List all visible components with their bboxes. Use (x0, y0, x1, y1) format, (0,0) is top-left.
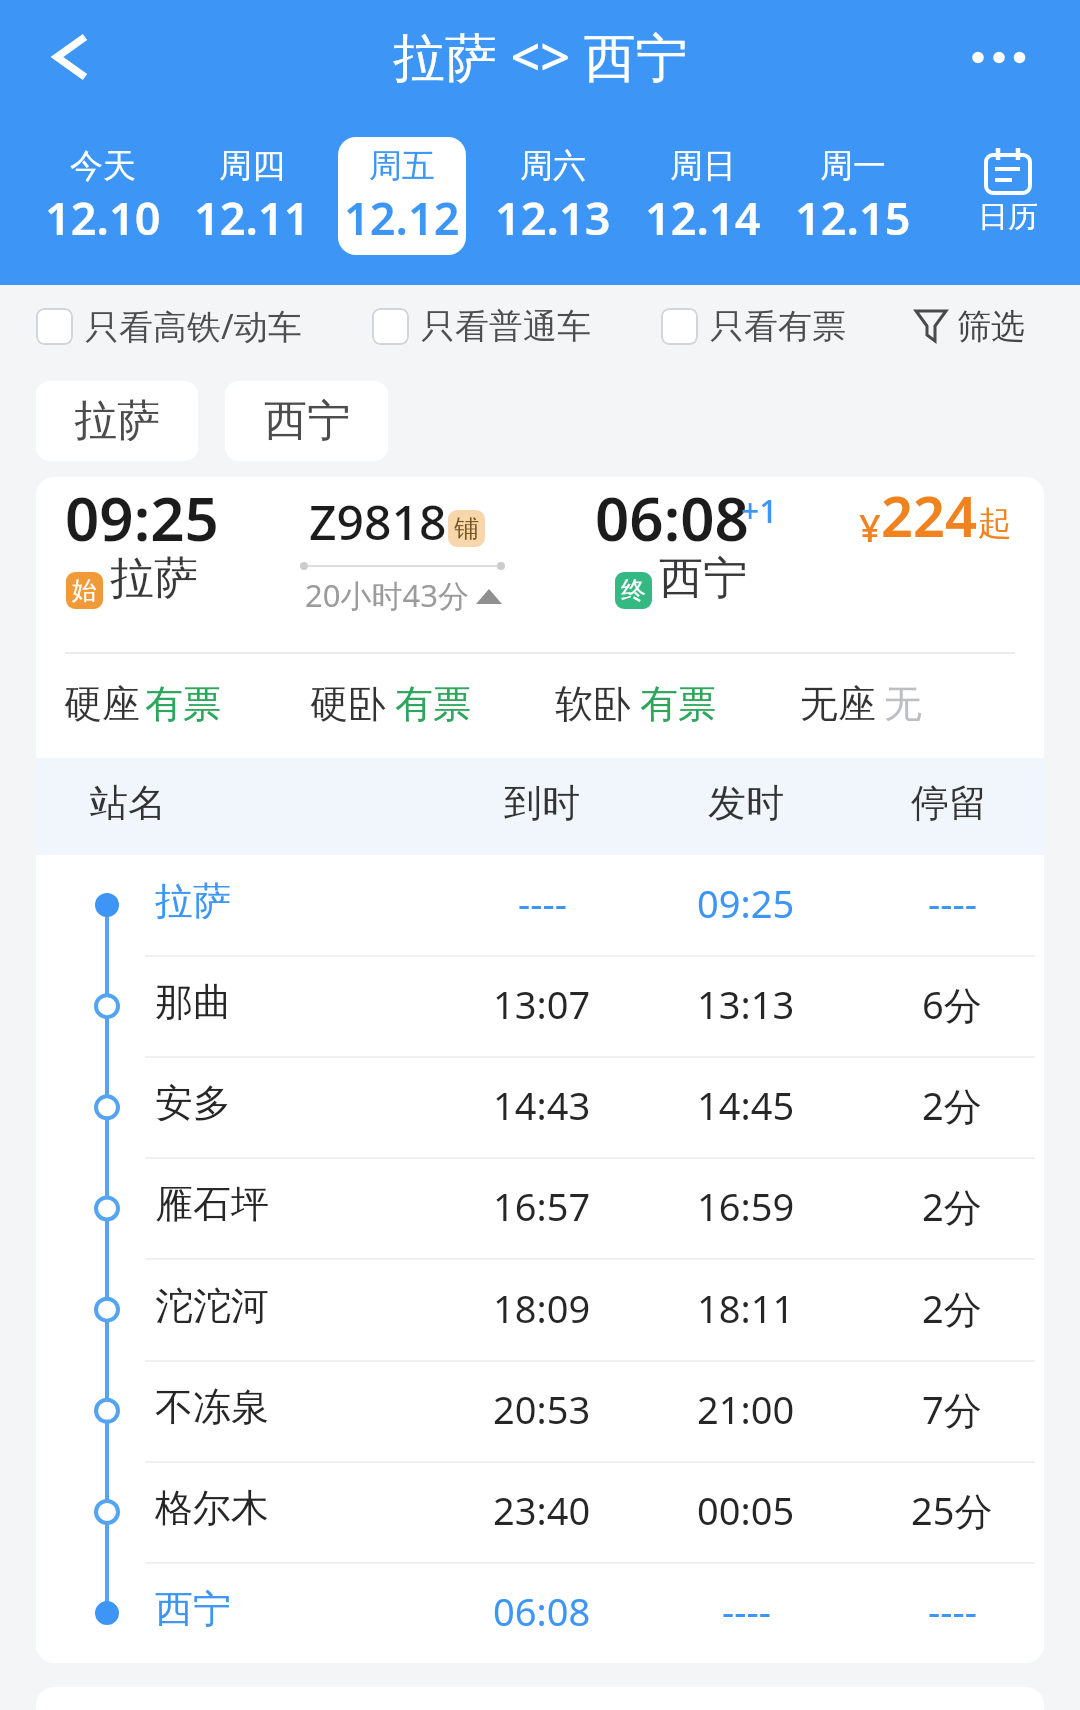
button[interactable]: 周六 (489, 137, 617, 255)
button[interactable] (136, 1158, 1044, 1258)
staticText: 硬座 (64, 680, 140, 728)
button[interactable]: 今天 (39, 137, 167, 255)
staticText: 12.13 (495, 187, 611, 248)
staticText: 13:07 (493, 978, 591, 1030)
staticText: 20小时43分 (305, 574, 469, 616)
staticText: 西宁 (264, 394, 350, 448)
staticText: 今天 (70, 145, 136, 187)
staticText: 周五 (369, 145, 435, 187)
button[interactable]: 拉萨 (36, 381, 198, 461)
staticText: 有票 (145, 680, 221, 728)
staticText: 00:05 (697, 1484, 795, 1536)
staticText: 始 (72, 575, 97, 606)
button[interactable]: 筛选 (915, 296, 1025, 356)
staticText: 14:43 (493, 1079, 591, 1131)
staticText: 到时 (504, 779, 580, 827)
staticText: 站名 (90, 779, 166, 827)
staticText: 12.11 (194, 187, 310, 248)
staticText: 20:53 (493, 1383, 591, 1435)
staticText: 不冻泉 (155, 1383, 269, 1431)
button[interactable] (136, 956, 1044, 1056)
staticText: 25分 (911, 1484, 993, 1536)
staticText: ---- (928, 1585, 977, 1637)
staticText: 发时 (708, 779, 784, 827)
staticText: 18:09 (493, 1282, 591, 1334)
button[interactable] (136, 1361, 1044, 1461)
staticText: 09:25 (65, 477, 219, 559)
button[interactable]: 只看有票 (661, 296, 846, 356)
staticText: 12.14 (645, 187, 761, 248)
staticText: 有票 (640, 680, 716, 728)
button[interactable] (136, 1057, 1044, 1157)
staticText: 软卧 (555, 680, 631, 728)
staticText: 6分 (922, 978, 982, 1030)
button[interactable] (136, 1260, 1044, 1360)
staticText: 铺 (454, 513, 479, 544)
staticText: 只看有票 (710, 305, 846, 348)
button[interactable] (136, 1563, 1044, 1663)
staticText: 无座 (800, 680, 876, 728)
staticText: 12.15 (795, 187, 911, 248)
staticText: 雁石坪 (155, 1180, 269, 1228)
staticText: 起 (978, 502, 1012, 545)
button[interactable]: 日历 (960, 140, 1055, 252)
staticText: 7分 (922, 1383, 982, 1435)
staticText: ---- (518, 877, 567, 929)
staticText: 23:40 (493, 1484, 591, 1536)
button[interactable]: 只看高铁/动车 (36, 296, 302, 356)
staticText: +1 (741, 489, 778, 533)
button[interactable] (955, 35, 1035, 80)
button[interactable]: 只看普通车 (372, 296, 591, 356)
staticText: 西宁 (659, 551, 747, 606)
staticText: 拉萨 (110, 551, 198, 606)
staticText: 拉萨 (155, 877, 231, 925)
staticText: 那曲 (155, 978, 231, 1026)
staticText: 格尔木 (155, 1484, 269, 1532)
staticText: Z9818 (309, 489, 447, 554)
staticText: 224 (881, 477, 978, 553)
staticText: 16:57 (493, 1180, 591, 1232)
staticText: 只看普通车 (421, 305, 591, 348)
staticText: 日历 (978, 198, 1038, 236)
button[interactable] (136, 1462, 1044, 1562)
staticText: 无 (884, 680, 922, 728)
staticText: ---- (928, 877, 977, 929)
staticText: 安多 (155, 1079, 231, 1127)
staticText: 周日 (670, 145, 736, 187)
staticText: 16:59 (697, 1180, 795, 1232)
staticText: 12.12 (344, 187, 460, 248)
button[interactable] (40, 25, 100, 89)
staticText: 拉萨 (74, 394, 160, 448)
staticText: 周四 (219, 145, 285, 187)
button[interactable]: 周五 (338, 137, 466, 255)
staticText: 有票 (395, 680, 471, 728)
staticText: 周六 (520, 145, 586, 187)
staticText: 13:13 (697, 978, 795, 1030)
button[interactable]: 09:25 (36, 477, 1044, 653)
staticText: ---- (722, 1585, 771, 1637)
staticText: 硬卧 (310, 680, 386, 728)
staticText: 06:08 (595, 477, 749, 559)
button[interactable]: 西宁 (225, 381, 388, 461)
staticText: 筛选 (957, 305, 1025, 348)
staticText: 只看高铁/动车 (85, 303, 302, 349)
button[interactable]: 周一 (789, 137, 917, 255)
staticText: 2分 (922, 1079, 982, 1131)
staticText: 14:45 (697, 1079, 795, 1131)
staticText: 拉萨 <> 西宁 (393, 20, 688, 91)
staticText: 09:25 (697, 877, 795, 929)
staticText: 18:11 (697, 1282, 795, 1334)
staticText: 12.10 (45, 187, 161, 248)
staticText: 终 (621, 575, 646, 606)
staticText: 21:00 (697, 1383, 795, 1435)
staticText: ¥ (859, 501, 881, 553)
button[interactable] (136, 855, 1044, 955)
staticText: 沱沱河 (155, 1282, 269, 1330)
staticText: 周一 (820, 145, 886, 187)
staticText: 2分 (922, 1282, 982, 1334)
button[interactable]: 周四 (188, 137, 316, 255)
staticText: 西宁 (155, 1585, 231, 1633)
staticText: 停留 (911, 779, 987, 827)
button[interactable]: 周日 (639, 137, 767, 255)
staticText: 2分 (922, 1180, 982, 1232)
